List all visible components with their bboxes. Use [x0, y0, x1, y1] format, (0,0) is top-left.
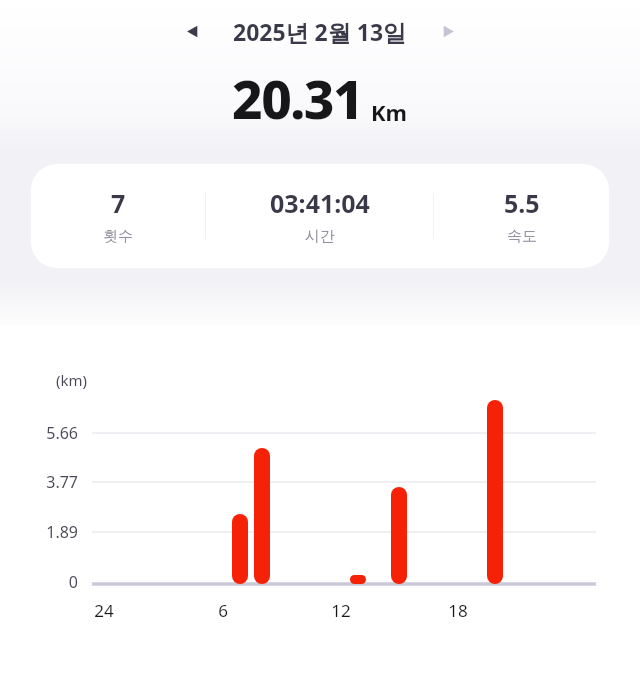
button[interactable]: 03:41:04: [206, 186, 433, 246]
staticText: 7: [111, 186, 126, 220]
staticText: 0: [6, 571, 78, 593]
button[interactable]: 7: [31, 186, 205, 246]
button[interactable]: 5.5: [434, 186, 609, 246]
staticText: 20.31: [232, 62, 363, 134]
staticText: 3.77: [6, 471, 78, 493]
staticText: 횟수: [103, 227, 133, 246]
staticText: 18: [428, 599, 488, 622]
staticText: 03:41:04: [270, 186, 370, 220]
button[interactable]: 7: [31, 164, 609, 268]
staticText: 24: [74, 599, 134, 622]
staticText: 속도: [507, 227, 537, 246]
staticText: 5.5: [504, 186, 540, 220]
staticText: 12: [311, 599, 371, 622]
staticText: (km): [56, 370, 88, 390]
staticText: 2025년 2월 13일: [233, 16, 407, 47]
staticText: 5.66: [6, 422, 78, 444]
staticText: 1.89: [6, 521, 78, 543]
staticText: 시간: [305, 227, 335, 246]
button[interactable]: Previous day: [171, 10, 213, 52]
button[interactable]: Next day: [427, 10, 469, 52]
staticText: Km: [371, 97, 408, 127]
staticText: 6: [193, 599, 253, 622]
